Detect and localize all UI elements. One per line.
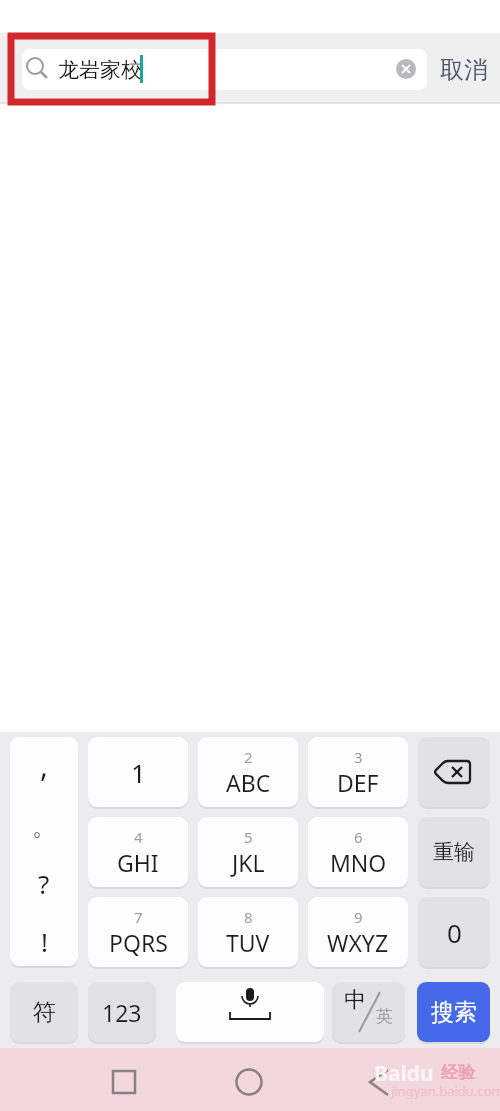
staticText: jingyan.baidu.com — [391, 1082, 500, 1100]
staticText: 2 — [244, 747, 253, 767]
staticText: 9 — [354, 907, 363, 927]
staticText: 搜索 — [431, 998, 477, 1027]
staticText: DEF — [337, 767, 379, 798]
button[interactable]: 8 — [198, 897, 298, 967]
staticText: 取消 — [440, 55, 488, 85]
button[interactable]: 1 — [88, 737, 188, 807]
button[interactable]: 取消 — [440, 49, 500, 90]
staticText: 英 — [376, 1006, 393, 1027]
button[interactable] — [392, 55, 420, 83]
staticText: 。 — [32, 812, 56, 842]
staticText: PQRS — [109, 927, 168, 958]
button[interactable] — [22, 49, 427, 90]
button[interactable]: , — [10, 737, 78, 966]
button[interactable]: 搜索 — [417, 982, 490, 1042]
staticText: 重输 — [433, 839, 475, 865]
button[interactable]: 中 — [332, 982, 405, 1042]
staticText: TUV — [226, 927, 270, 958]
button[interactable]: 6 — [308, 817, 408, 887]
button[interactable]: 123 — [88, 982, 156, 1042]
staticText: 123 — [102, 997, 142, 1028]
staticText: ABC — [226, 767, 271, 798]
staticText: , — [40, 745, 49, 781]
staticText: 经验 — [441, 1062, 475, 1083]
staticText: 7 — [134, 907, 143, 927]
button[interactable]: 0 — [418, 897, 490, 967]
staticText: JKL — [232, 847, 265, 878]
staticText: 龙岩家校 — [58, 57, 142, 83]
staticText: ! — [41, 924, 48, 959]
button[interactable]: 7 — [88, 897, 188, 967]
staticText: 3 — [354, 747, 363, 767]
staticText: 4 — [134, 827, 143, 847]
button[interactable]: 9 — [308, 897, 408, 967]
button[interactable]: 4 — [88, 817, 188, 887]
staticText: 1 — [131, 755, 146, 790]
button[interactable] — [228, 1061, 270, 1103]
button[interactable]: 重输 — [418, 817, 490, 887]
staticText: 符 — [33, 998, 56, 1027]
staticText: WXYZ — [327, 927, 389, 958]
staticText: 5 — [244, 827, 253, 847]
button[interactable] — [357, 1061, 399, 1103]
staticText: GHI — [117, 847, 159, 878]
button[interactable] — [176, 982, 324, 1042]
staticText: 6 — [354, 827, 363, 847]
staticText: 0 — [447, 915, 462, 950]
button[interactable] — [103, 1061, 145, 1103]
staticText: 中 — [344, 986, 366, 1014]
button[interactable]: 2 — [198, 737, 298, 807]
button[interactable] — [418, 737, 490, 807]
staticText: MNO — [330, 847, 387, 878]
staticText: Baidu — [374, 1059, 434, 1088]
button[interactable]: 5 — [198, 817, 298, 887]
staticText: 8 — [244, 907, 253, 927]
button[interactable]: 符 — [10, 982, 78, 1042]
button[interactable]: 3 — [308, 737, 408, 807]
staticText: ? — [38, 866, 50, 901]
